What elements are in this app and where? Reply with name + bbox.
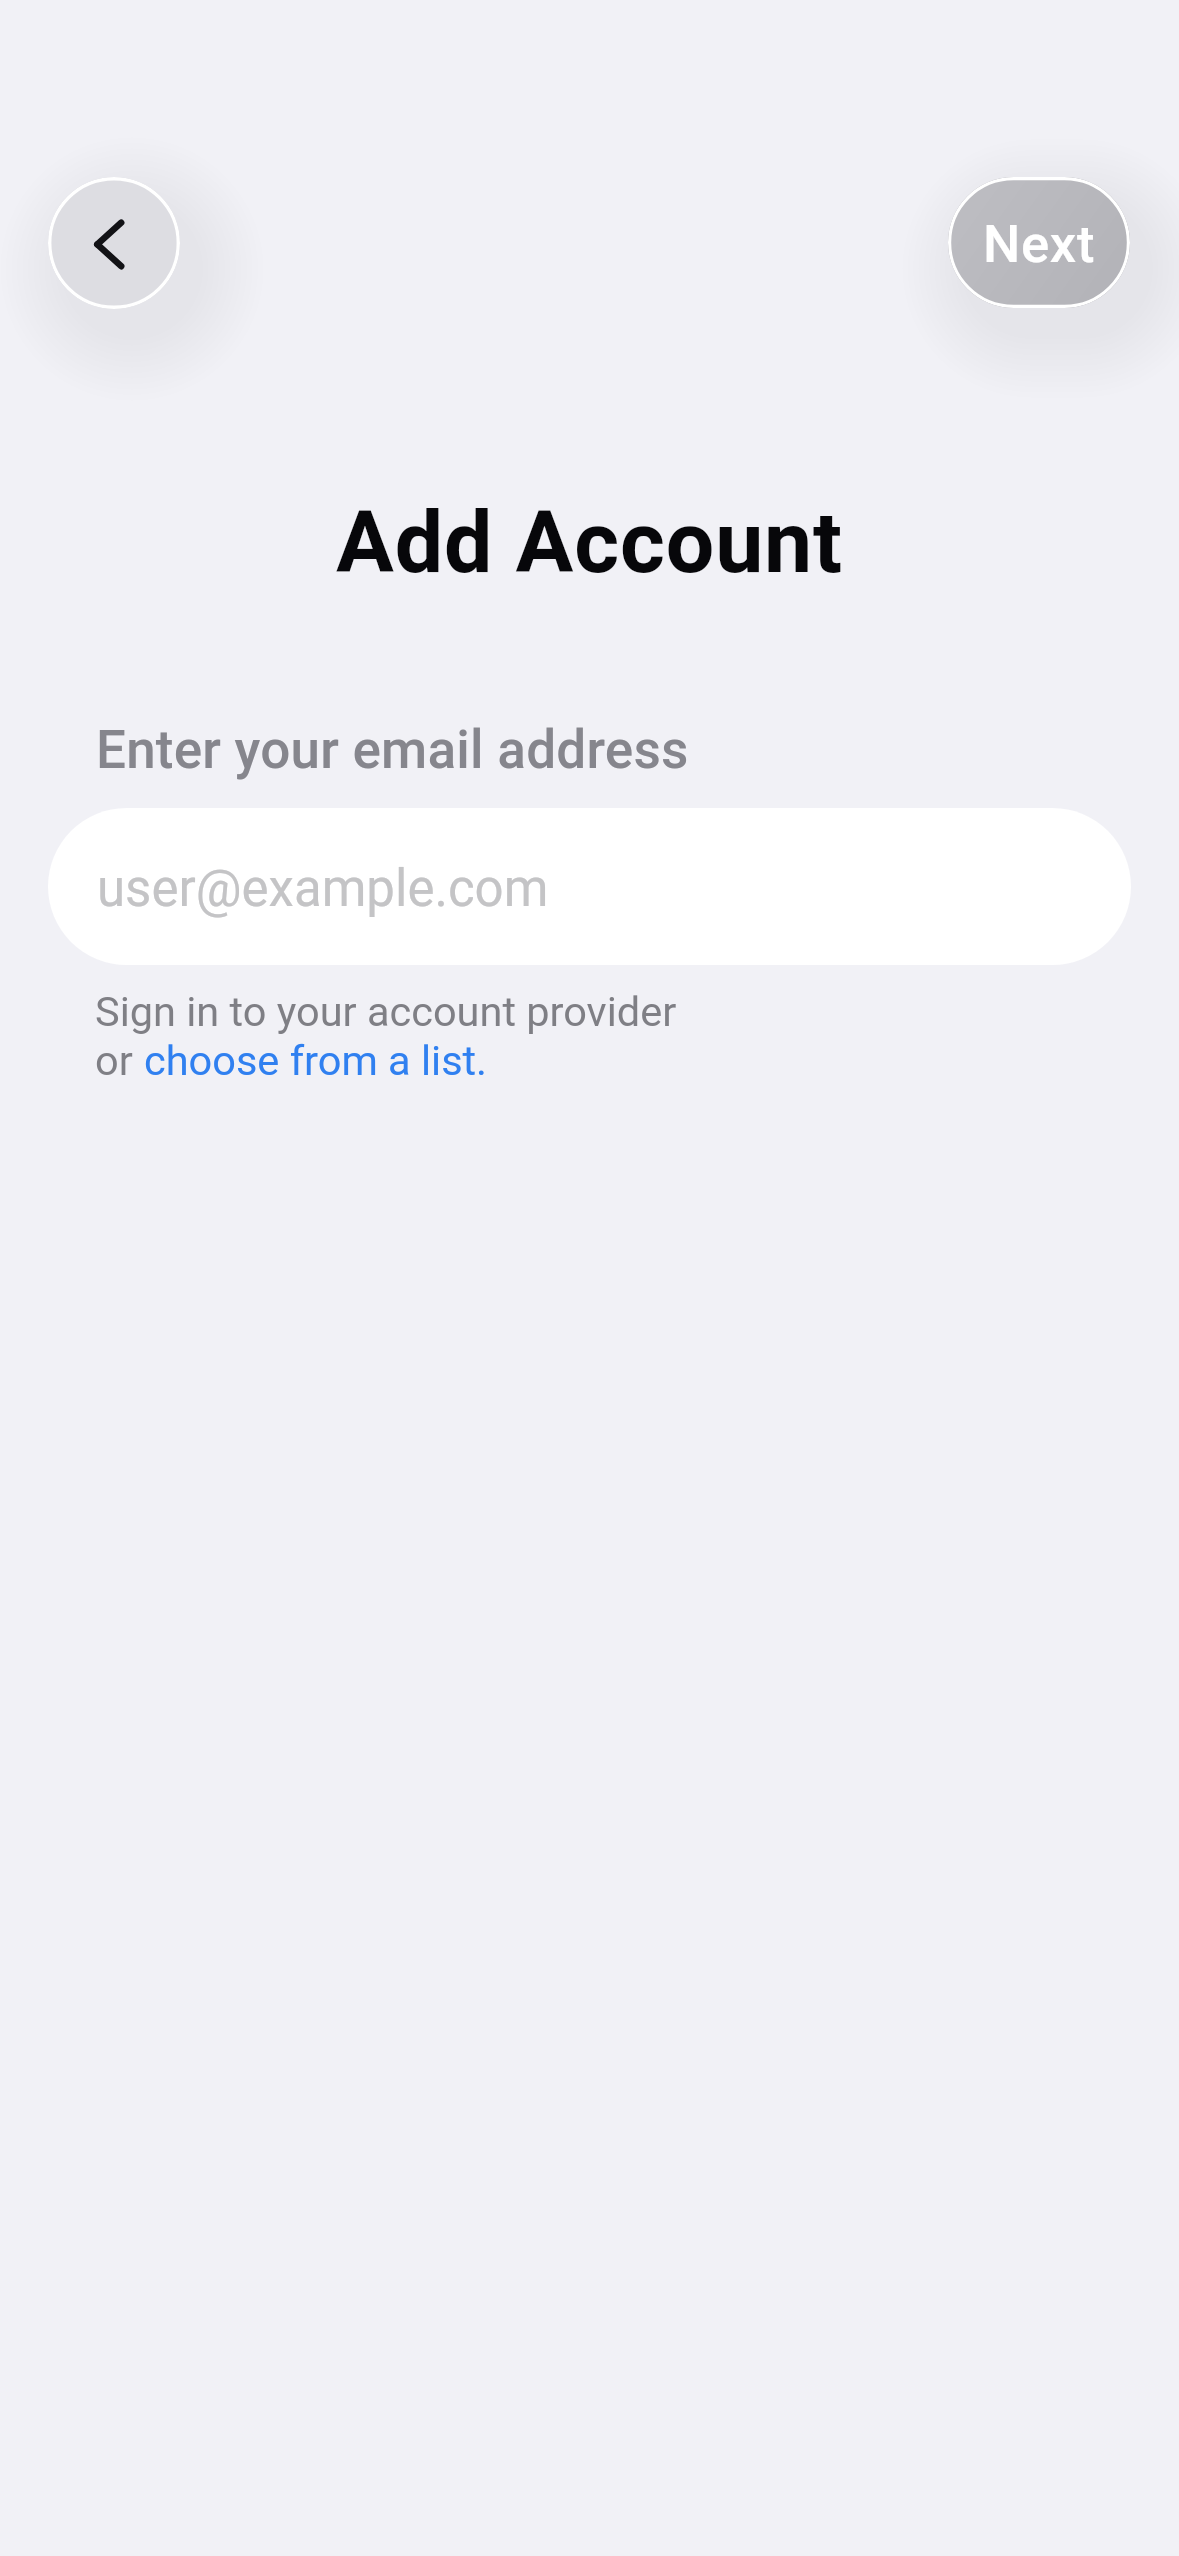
- button[interactable]: Next: [948, 177, 1130, 308]
- staticText: Enter your email address: [96, 719, 689, 781]
- staticText: Next: [983, 213, 1096, 275]
- staticText: or: [95, 1036, 144, 1085]
- staticText: Add Account: [336, 492, 843, 593]
- staticText: Sign in to your account provider: [95, 987, 677, 1036]
- button[interactable]: choose from a list.: [144, 1036, 488, 1085]
- staticText: user@example.com: [97, 859, 549, 919]
- button[interactable]: user@example.com: [48, 808, 1131, 965]
- button[interactable]: Back: [48, 177, 180, 309]
